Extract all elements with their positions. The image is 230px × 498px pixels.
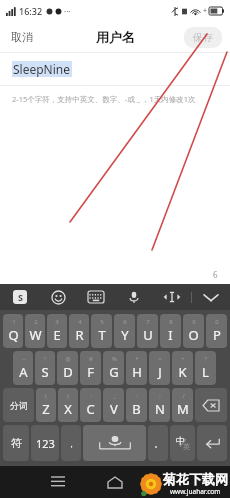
staticText: 保存 xyxy=(193,31,213,44)
button[interactable]: Space xyxy=(83,425,146,461)
button[interactable]: Enter xyxy=(197,425,227,461)
staticText: P xyxy=(213,326,221,344)
button[interactable]: ; xyxy=(149,388,170,422)
staticText: 0 xyxy=(215,318,219,326)
staticText: F xyxy=(87,363,94,381)
button[interactable]: ， xyxy=(61,425,81,461)
button[interactable]: Home xyxy=(85,466,145,498)
staticText: Z xyxy=(42,400,50,418)
staticText: _ xyxy=(113,392,116,400)
button[interactable]: Sogou input xyxy=(0,284,39,310)
button[interactable]: 中 xyxy=(170,425,195,461)
button[interactable]: 6 xyxy=(114,314,135,348)
button[interactable]: ( xyxy=(36,388,56,422)
staticText: 2-15个字符，支持中英文、数字、-或 _ ，1天内修改1次 xyxy=(12,94,196,104)
staticText: X xyxy=(64,400,72,418)
button[interactable]: / xyxy=(172,388,193,422)
staticText: 英 xyxy=(183,442,190,451)
button[interactable]: 分词 xyxy=(3,388,34,422)
button[interactable]: Recents xyxy=(0,466,115,498)
staticText: 6 xyxy=(123,318,127,326)
staticText: U xyxy=(143,326,153,344)
staticText: 菊花下载网 xyxy=(163,471,228,487)
staticText: = xyxy=(158,355,162,363)
staticText: C xyxy=(86,400,95,418)
button[interactable]: _ xyxy=(103,388,124,422)
button[interactable]: SleepNine xyxy=(0,53,230,85)
staticText: ( xyxy=(45,392,47,400)
staticText: * xyxy=(135,355,139,363)
staticText: 8 xyxy=(169,318,173,326)
staticText: 5 xyxy=(100,318,104,326)
staticText: 用户名 xyxy=(96,29,135,45)
button[interactable]: ? xyxy=(195,351,216,385)
button[interactable]: ! xyxy=(35,351,55,385)
button[interactable]: 符 xyxy=(3,425,29,461)
staticText: www.juahar.com xyxy=(170,487,221,496)
staticText: + xyxy=(181,355,185,363)
staticText: ! xyxy=(44,355,46,363)
button[interactable]: Backspace xyxy=(195,388,227,422)
button[interactable]: * xyxy=(126,351,147,385)
staticText: / xyxy=(182,392,185,400)
staticText: + xyxy=(203,6,208,16)
staticText: 2 xyxy=(34,318,38,326)
staticText: - xyxy=(90,392,92,400)
button[interactable]: Keyboard layout xyxy=(77,284,115,310)
button[interactable]: 1 xyxy=(3,314,23,348)
staticText: K xyxy=(178,363,187,381)
button[interactable]: % xyxy=(103,351,124,385)
button[interactable]: 4 xyxy=(69,314,89,348)
staticText: ~ xyxy=(22,355,26,363)
button[interactable]: 9 xyxy=(183,314,204,348)
staticText: 1 xyxy=(12,318,16,326)
button[interactable]: ~ xyxy=(13,351,33,385)
staticText: ; xyxy=(159,392,161,400)
button[interactable]: 8 xyxy=(160,314,181,348)
button[interactable]: = xyxy=(149,351,170,385)
staticText: # xyxy=(89,355,93,363)
button[interactable]: 5 xyxy=(91,314,112,348)
staticText: 4 xyxy=(78,318,82,326)
button[interactable]: Emoji xyxy=(39,284,77,310)
staticText: 16:32 xyxy=(19,5,43,17)
staticText: ， xyxy=(67,438,76,449)
button[interactable]: 3 xyxy=(47,314,67,348)
staticText: ··· xyxy=(64,6,71,17)
staticText: 9 xyxy=(192,318,196,326)
button[interactable]: 0 xyxy=(206,314,227,348)
staticText: D xyxy=(63,363,73,381)
button[interactable]: 保存 xyxy=(184,27,222,48)
staticText: V xyxy=(110,400,118,418)
button[interactable]: ) xyxy=(58,388,78,422)
button[interactable]: 取消 xyxy=(9,26,35,48)
staticText: ) xyxy=(67,392,69,400)
staticText: H xyxy=(132,363,142,381)
staticText: 符 xyxy=(11,436,22,450)
staticText: A xyxy=(19,363,28,381)
button[interactable]: : xyxy=(126,388,147,422)
staticText: B xyxy=(132,400,141,418)
button[interactable]: + xyxy=(172,351,193,385)
staticText: @ xyxy=(65,355,71,363)
staticText: 。 xyxy=(154,438,163,449)
button[interactable]: 。 xyxy=(148,425,168,461)
staticText: 3 xyxy=(55,318,59,326)
staticText: Y xyxy=(121,326,129,344)
staticText: ? xyxy=(204,355,207,363)
button[interactable]: @ xyxy=(57,351,78,385)
staticText: G xyxy=(109,363,119,381)
button[interactable]: 7 xyxy=(137,314,158,348)
button[interactable]: Hide keyboard xyxy=(192,284,230,310)
button[interactable]: # xyxy=(80,351,101,385)
staticText: J xyxy=(158,363,162,381)
button[interactable]: - xyxy=(80,388,101,422)
staticText: 中 xyxy=(176,435,185,446)
button[interactable]: Move cursor xyxy=(153,284,191,310)
staticText: 分词 xyxy=(10,400,28,411)
button[interactable]: 123 xyxy=(31,425,59,461)
staticText: I xyxy=(168,326,173,344)
button[interactable]: 2 xyxy=(25,314,45,348)
staticText: 取消 xyxy=(11,30,33,44)
button[interactable]: Voice input xyxy=(115,284,153,310)
